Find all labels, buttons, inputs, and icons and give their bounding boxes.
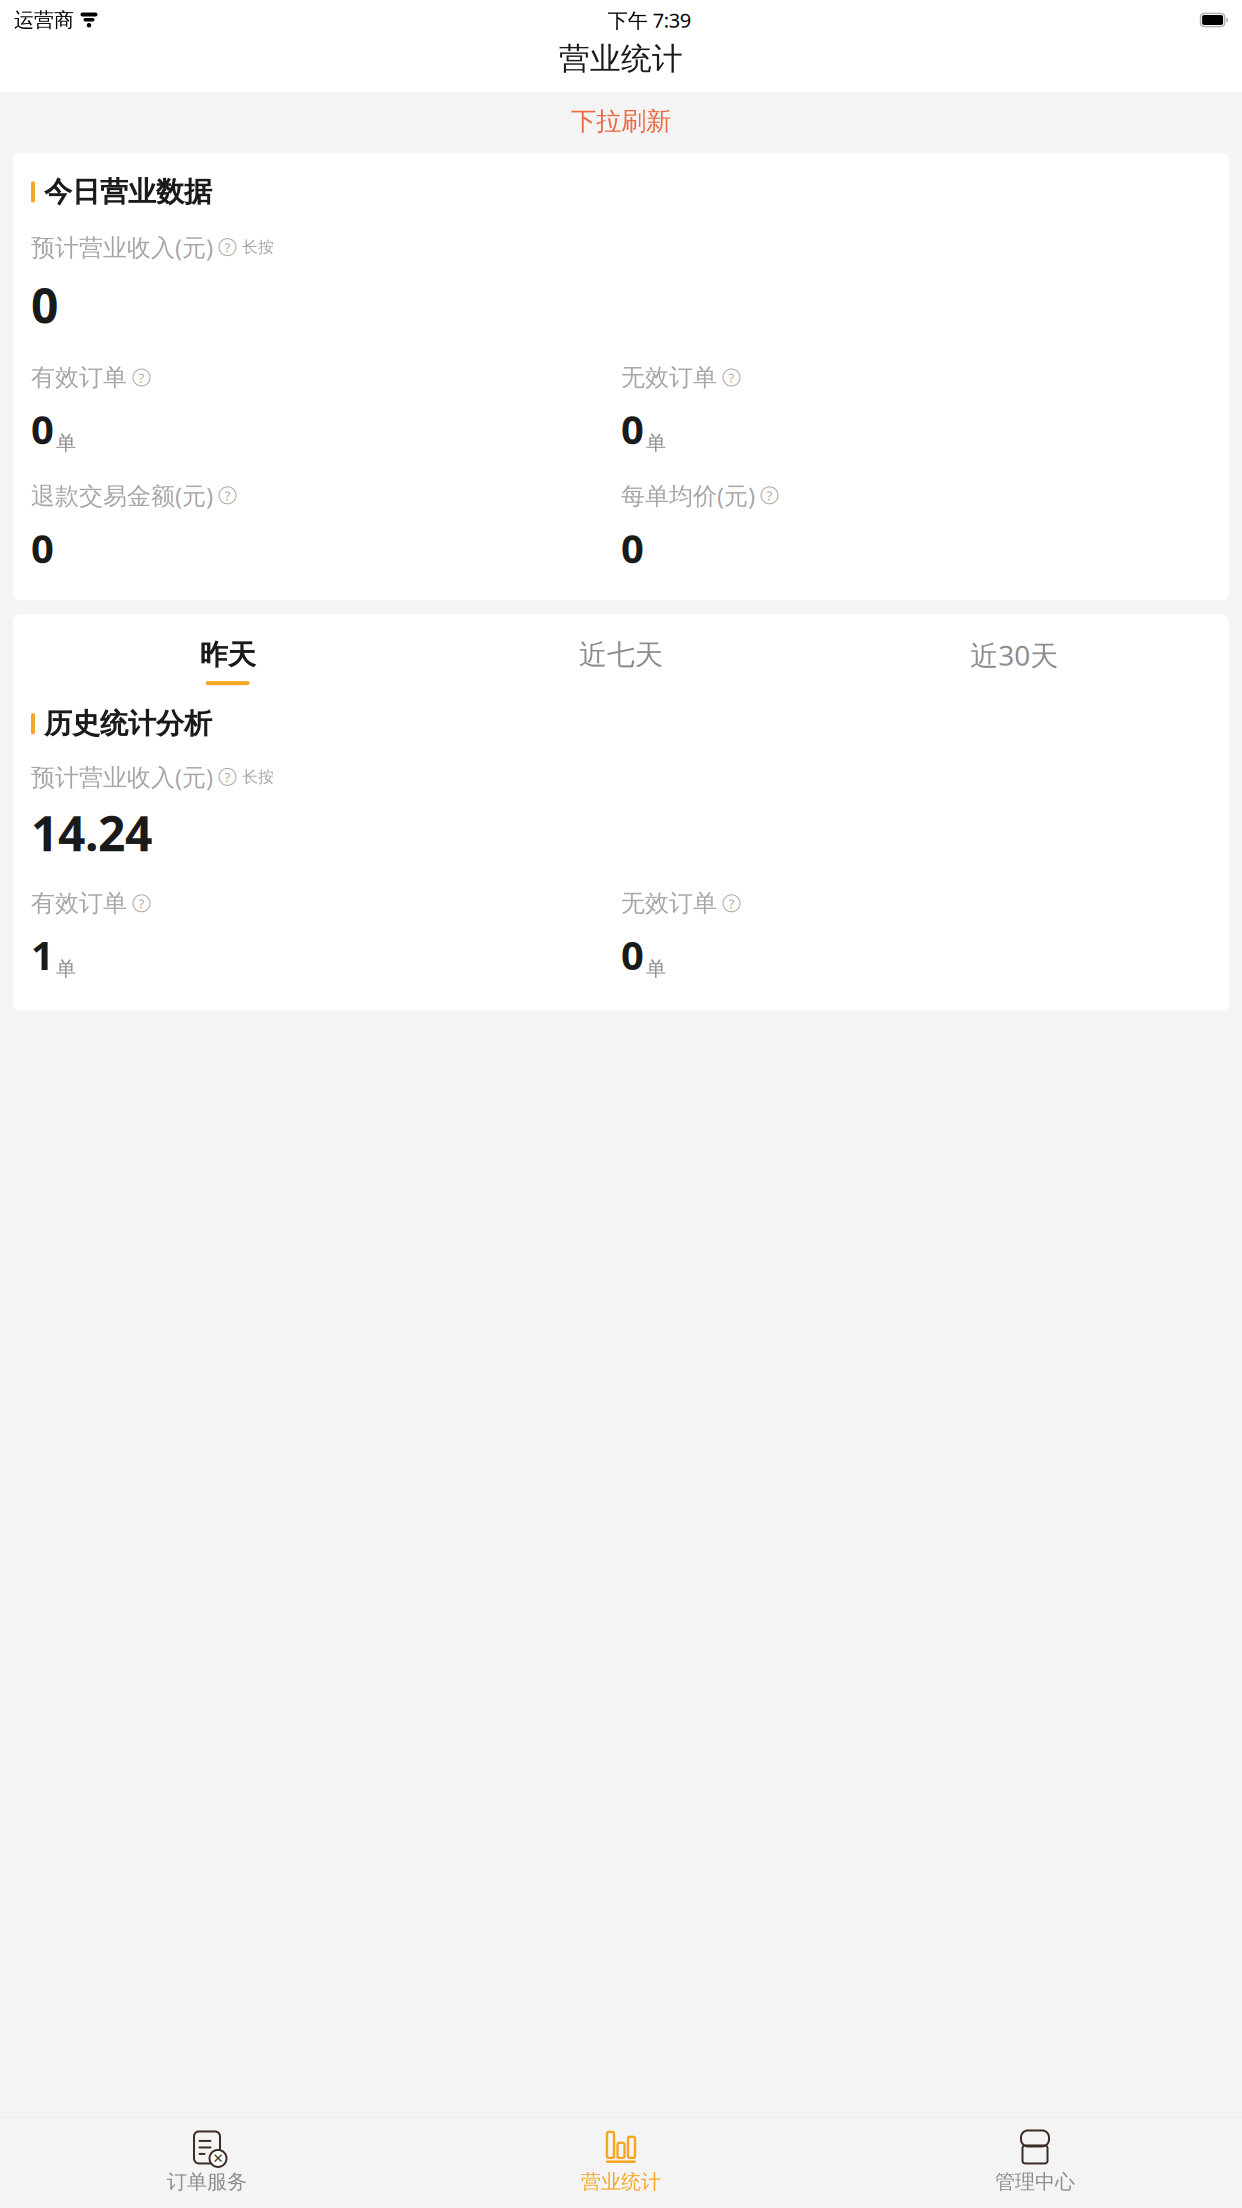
staticText: 管理中心 bbox=[995, 2169, 1075, 2194]
staticText: 14.24 bbox=[31, 801, 152, 864]
staticText: ? bbox=[728, 369, 734, 386]
staticText: 下午 7:39 bbox=[608, 7, 691, 33]
staticText: ? bbox=[224, 486, 230, 504]
staticText: 0 bbox=[621, 521, 644, 574]
staticText: 0 bbox=[31, 273, 58, 337]
staticText: 预计营业收入(元) bbox=[31, 761, 213, 793]
button[interactable]: 近30天 bbox=[818, 632, 1211, 691]
staticText: 近七天 bbox=[579, 638, 663, 672]
staticText: 单 bbox=[646, 431, 666, 455]
staticText: 无效订单 bbox=[621, 889, 717, 918]
staticText: 运营商 bbox=[14, 8, 74, 32]
button[interactable]: 近七天 bbox=[424, 634, 818, 689]
staticText: ? bbox=[728, 894, 734, 912]
staticText: 预计营业收入(元) bbox=[31, 231, 213, 263]
staticText: ? bbox=[766, 486, 772, 504]
staticText: 历史统计分析 bbox=[44, 707, 212, 741]
staticText: 0 bbox=[31, 402, 54, 455]
staticText: 营业统计 bbox=[581, 2169, 661, 2194]
staticText: 0 bbox=[621, 402, 644, 455]
staticText: 有效订单 bbox=[31, 363, 127, 392]
staticText: 退款交易金额(元) bbox=[31, 479, 213, 511]
staticText: 单 bbox=[646, 957, 666, 981]
staticText: 1 bbox=[31, 928, 54, 981]
staticText: 无效订单 bbox=[621, 363, 717, 392]
staticText: 每单均价(元) bbox=[621, 479, 755, 511]
button[interactable]: 管理中心 bbox=[828, 2123, 1242, 2204]
staticText: 单 bbox=[56, 957, 76, 981]
staticText: 0 bbox=[31, 521, 54, 574]
staticText: 今日营业数据 bbox=[44, 175, 212, 209]
staticText: 下拉刷新 bbox=[571, 106, 671, 137]
button[interactable]: 昨天 bbox=[31, 634, 424, 689]
staticText: 有效订单 bbox=[31, 889, 127, 918]
button[interactable]: 营业统计 bbox=[414, 2123, 828, 2204]
staticText: 订单服务 bbox=[167, 2169, 247, 2194]
button[interactable]: ✕ bbox=[0, 2123, 414, 2204]
staticText: ? bbox=[138, 369, 144, 386]
staticText: 昨天 bbox=[200, 638, 256, 672]
staticText: 近30天 bbox=[970, 636, 1058, 674]
staticText: 单 bbox=[56, 431, 76, 455]
staticText: ? bbox=[224, 238, 230, 256]
staticText: 0 bbox=[621, 928, 644, 981]
staticText: 长按 bbox=[242, 237, 274, 257]
staticText: 长按 bbox=[242, 767, 274, 787]
staticText: 营业统计 bbox=[559, 40, 683, 78]
staticText: ✕ bbox=[212, 2151, 223, 2166]
staticText: ? bbox=[138, 894, 144, 912]
staticText: ? bbox=[224, 768, 230, 786]
